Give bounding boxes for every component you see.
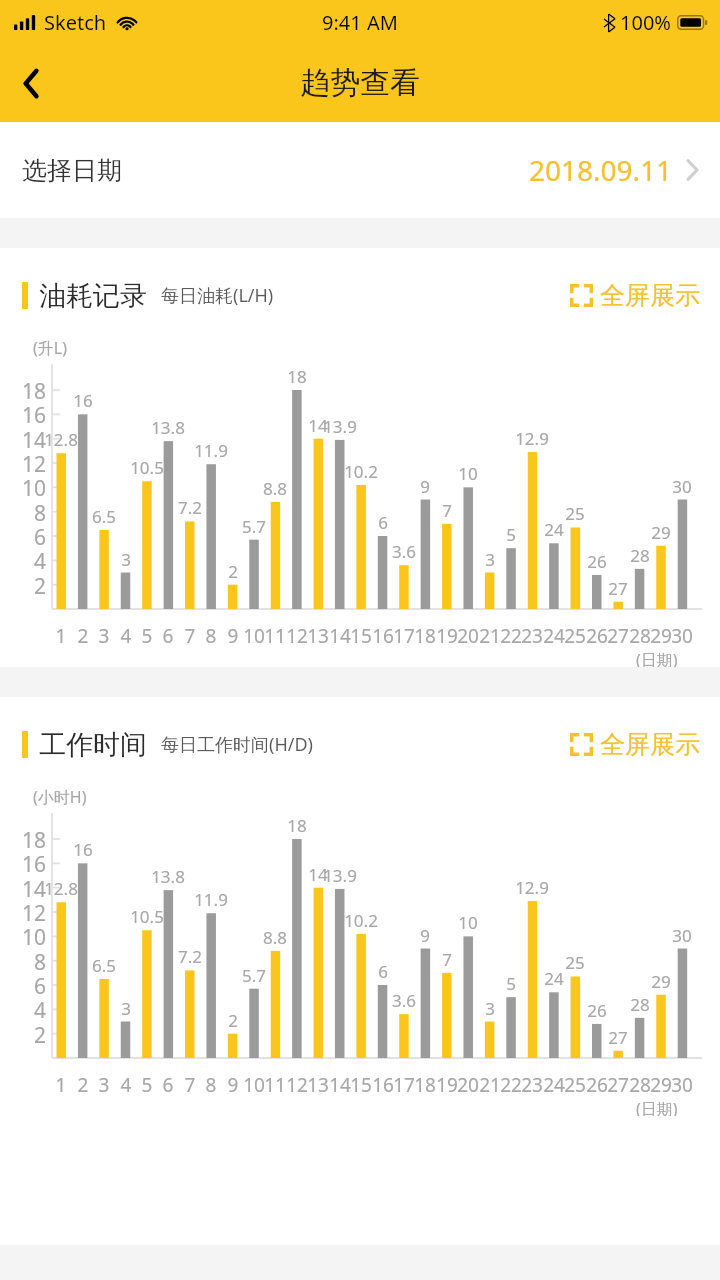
staticText: 12.9 — [507, 427, 557, 450]
staticText: 4 — [111, 1072, 141, 1098]
staticText: 14 — [293, 863, 343, 886]
staticText: 10.2 — [336, 909, 386, 932]
staticText: 8 — [8, 948, 46, 977]
staticText: 3 — [465, 548, 515, 571]
staticText: 18 — [272, 365, 322, 388]
staticText: 9 — [400, 924, 450, 947]
staticText: 选择日期 — [22, 155, 122, 186]
staticText: 100% — [620, 9, 671, 36]
staticText: 7.2 — [165, 496, 215, 519]
staticText: 20 — [453, 623, 483, 649]
staticText: 5 — [486, 523, 536, 546]
staticText: 6 — [8, 972, 46, 1001]
staticText: 14 — [293, 414, 343, 437]
staticText: 13.9 — [315, 415, 365, 438]
staticText: (升L) — [33, 337, 67, 359]
staticText: 25 — [560, 623, 590, 649]
staticText: 18 — [8, 377, 46, 406]
staticText: (小时H) — [33, 786, 87, 808]
staticText: 17 — [389, 623, 419, 649]
staticText: 16 — [8, 401, 46, 430]
staticText: 18 — [8, 826, 46, 855]
staticText: 16 — [8, 850, 46, 879]
staticText: 1 — [46, 1072, 76, 1098]
staticText: 每日油耗(L/H) — [161, 283, 274, 308]
staticText: 12 — [8, 450, 46, 479]
staticText: 6 — [153, 623, 183, 649]
staticText: 27 — [593, 577, 643, 600]
staticText: 13.9 — [315, 864, 365, 887]
staticText: 23 — [517, 1072, 547, 1098]
staticText: 16 — [368, 1072, 398, 1098]
staticText: 10 — [8, 474, 46, 503]
staticText: 27 — [603, 623, 633, 649]
staticText: 29 — [636, 970, 686, 993]
button[interactable]: 全屏展示 — [570, 723, 700, 766]
staticText: 19 — [432, 1072, 462, 1098]
staticText: 29 — [646, 623, 676, 649]
staticText: 14 — [8, 426, 46, 455]
button[interactable]: 全屏展示 — [570, 274, 700, 317]
staticText: 6 — [358, 511, 408, 534]
staticText: 2 — [8, 572, 46, 601]
staticText: 7.2 — [165, 945, 215, 968]
staticText: 5.7 — [229, 515, 279, 538]
staticText: 13.8 — [143, 865, 193, 888]
staticText: 16 — [58, 838, 108, 861]
staticText: 17 — [389, 1072, 419, 1098]
staticText: 12.9 — [507, 876, 557, 899]
staticText: 11 — [260, 623, 290, 649]
staticText: 工作时间 — [39, 728, 147, 762]
button[interactable]: 选择日期 — [0, 122, 720, 218]
staticText: 11.9 — [186, 888, 236, 911]
staticText: 28 — [625, 1072, 655, 1098]
staticText: 13.8 — [143, 416, 193, 439]
staticText: 趋势查看 — [300, 64, 420, 102]
staticText: 9 — [400, 475, 450, 498]
staticText: (日期) — [636, 1098, 678, 1120]
staticText: 2 — [208, 560, 258, 583]
staticText: 3.6 — [379, 540, 429, 563]
staticText: 18 — [272, 814, 322, 837]
staticText: 8.8 — [250, 477, 300, 500]
staticText: 3 — [101, 548, 151, 571]
staticText: 16 — [368, 623, 398, 649]
staticText: 19 — [432, 623, 462, 649]
staticText: 30 — [667, 623, 697, 649]
staticText: 12 — [282, 1072, 312, 1098]
staticText: 26 — [572, 550, 622, 573]
staticText: 3 — [465, 997, 515, 1020]
staticText: 26 — [582, 623, 612, 649]
staticText: 6 — [153, 1072, 183, 1098]
staticText: 25 — [550, 951, 600, 974]
staticText: 11 — [260, 1072, 290, 1098]
staticText: 4 — [111, 623, 141, 649]
staticText: 8 — [8, 499, 46, 528]
button[interactable]: Back — [0, 53, 60, 113]
staticText: 7 — [422, 499, 472, 522]
staticText: 7 — [175, 623, 205, 649]
staticText: 24 — [539, 1072, 569, 1098]
staticText: 20 — [453, 1072, 483, 1098]
staticText: 6.5 — [79, 954, 129, 977]
staticText: 24 — [529, 967, 579, 990]
staticText: 9 — [218, 1072, 248, 1098]
staticText: 1 — [46, 623, 76, 649]
staticText: 5.7 — [229, 964, 279, 987]
staticText: 每日工作时间(H/D) — [161, 732, 313, 757]
staticText: 全屏展示 — [600, 280, 700, 311]
staticText: 10.2 — [336, 460, 386, 483]
staticText: 9:41 AM — [322, 9, 398, 36]
staticText: 27 — [593, 1026, 643, 1049]
staticText: 2 — [208, 1009, 258, 1032]
staticText: 4 — [8, 996, 46, 1025]
staticText: 24 — [529, 518, 579, 541]
staticText: 22 — [496, 1072, 526, 1098]
staticText: 油耗记录 — [39, 279, 147, 313]
staticText: 28 — [625, 623, 655, 649]
staticText: 6 — [8, 523, 46, 552]
staticText: 15 — [346, 1072, 376, 1098]
staticText: 21 — [475, 623, 505, 649]
staticText: 11.9 — [186, 439, 236, 462]
staticText: 21 — [475, 1072, 505, 1098]
